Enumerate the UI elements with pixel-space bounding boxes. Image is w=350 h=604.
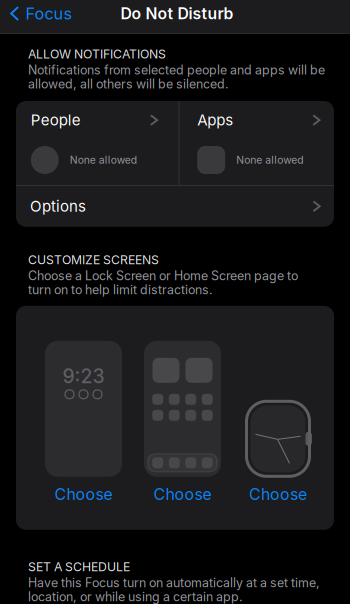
button[interactable]: People bbox=[16, 101, 179, 185]
staticText: Choose bbox=[249, 485, 307, 504]
staticText: Have this Focus turn on automatically at… bbox=[28, 575, 320, 590]
staticText: Do Not Disturb bbox=[120, 4, 233, 23]
staticText: turn on to help limit distractions. bbox=[28, 282, 213, 297]
button[interactable]: Focus bbox=[0, 0, 80, 27]
staticText: Focus bbox=[25, 4, 72, 23]
button[interactable]: Choose bbox=[243, 477, 313, 504]
staticText: location, or while using a certain app. bbox=[28, 589, 243, 604]
staticText: Choose a Lock Screen or Home Screen page… bbox=[28, 268, 298, 283]
staticText: People bbox=[31, 111, 81, 129]
staticText: allowed, all others will be silenced. bbox=[28, 76, 229, 91]
staticText: Choose bbox=[54, 485, 112, 504]
staticText: 9:23 bbox=[62, 365, 104, 388]
staticText: CUSTOMIZE SCREENS bbox=[28, 252, 159, 267]
button[interactable]: Options bbox=[16, 186, 334, 227]
staticText: None allowed bbox=[70, 154, 137, 166]
button[interactable]: Choose bbox=[48, 477, 118, 504]
staticText: SET A SCHEDULE bbox=[28, 559, 130, 574]
staticText: Options bbox=[30, 197, 86, 215]
button[interactable]: Apps bbox=[179, 101, 334, 185]
button[interactable]: Choose bbox=[147, 477, 217, 504]
staticText: Apps bbox=[197, 111, 233, 129]
staticText: Choose bbox=[153, 485, 211, 504]
staticText: None allowed bbox=[236, 154, 303, 166]
staticText: ALLOW NOTIFICATIONS bbox=[28, 47, 166, 61]
staticText: Notifications from selected people and a… bbox=[28, 62, 325, 77]
